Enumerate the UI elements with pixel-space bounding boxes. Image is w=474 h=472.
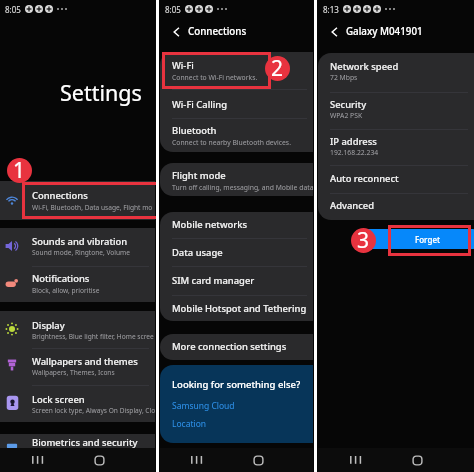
button[interactable]: Recents <box>349 455 362 465</box>
staticText: 192.168.22.234 <box>330 148 379 157</box>
staticText: Data usage <box>172 246 223 259</box>
button[interactable] <box>318 193 474 220</box>
button[interactable] <box>318 92 474 129</box>
button[interactable]: Recents <box>31 455 44 465</box>
staticText: Mobile Hotspot and Tethering <box>172 302 307 315</box>
staticText: More connection settings <box>172 340 287 353</box>
staticText: Wi-Fi Calling <box>172 98 227 111</box>
staticText: 8:05 <box>165 4 181 15</box>
button[interactable] <box>0 311 155 348</box>
button[interactable]: Home <box>412 455 423 466</box>
button[interactable]: Recents <box>190 455 203 465</box>
staticText: 72 Mbps <box>330 73 358 82</box>
staticText: Galaxy M041901 <box>346 25 423 38</box>
staticText: 1 <box>13 158 26 181</box>
staticText: Flight mode <box>172 169 226 182</box>
button[interactable] <box>160 334 313 360</box>
staticText: Connections <box>32 189 88 202</box>
button[interactable] <box>318 165 474 193</box>
staticText: Connections <box>188 25 247 38</box>
button[interactable]: Back <box>170 25 184 39</box>
button[interactable] <box>160 266 313 295</box>
staticText: Turn off calling, messaging, and Mobile … <box>172 183 316 192</box>
button[interactable]: Home <box>253 455 264 466</box>
staticText: Biometrics and security <box>32 436 138 449</box>
staticText: SIM card manager <box>172 274 255 287</box>
staticText: Wi-Fi, Bluetooth, Data usage, Flight mo <box>32 203 153 212</box>
staticText: Connect to Wi-Fi networks. <box>172 73 258 82</box>
staticText: Samsung Cloud <box>172 400 235 412</box>
staticText: Notifications <box>32 272 90 285</box>
staticText: Connect to nearby Bluetooth devices. <box>172 138 291 147</box>
staticText: Forget <box>415 234 441 245</box>
button[interactable] <box>0 228 155 266</box>
button[interactable] <box>160 416 313 436</box>
staticText: Screen lock type, Always On Display, Clo <box>32 406 156 415</box>
staticText: Brightness, Blue light filter, Home scre… <box>32 332 154 341</box>
button[interactable] <box>160 238 313 266</box>
staticText: Location <box>172 418 207 430</box>
button[interactable] <box>160 163 313 196</box>
button[interactable] <box>160 396 313 416</box>
staticText: Auto reconnect <box>330 172 399 185</box>
button[interactable] <box>0 266 155 302</box>
staticText: 8:05 <box>5 4 21 15</box>
staticText: Network speed <box>330 60 399 73</box>
staticText: 8:13 <box>323 4 339 15</box>
staticText: Mobile networks <box>172 218 248 231</box>
button[interactable] <box>160 212 313 238</box>
staticText: Wallpapers, Themes, Icons <box>32 368 115 377</box>
staticText: Bluetooth <box>172 124 217 137</box>
staticText: Sound mode, Ringtone, Volume <box>32 248 130 257</box>
button[interactable] <box>0 181 155 220</box>
button[interactable] <box>160 89 313 118</box>
button[interactable] <box>0 434 155 457</box>
staticText: IP address <box>330 135 377 148</box>
staticText: Block, allow, prioritise <box>32 286 100 295</box>
button[interactable] <box>160 295 313 321</box>
staticText: 2 <box>271 56 284 79</box>
button[interactable]: Home <box>94 455 105 466</box>
button[interactable] <box>0 348 155 385</box>
staticText: Sounds and vibration <box>32 235 128 248</box>
button[interactable] <box>318 129 474 165</box>
staticText: WPA2 PSK <box>330 111 363 120</box>
staticText: Wi-Fi <box>172 59 194 72</box>
button[interactable] <box>0 385 155 422</box>
button[interactable] <box>160 118 313 152</box>
staticText: Advanced <box>330 199 375 212</box>
staticText: 3 <box>357 228 370 251</box>
staticText: Security <box>330 98 367 111</box>
staticText: Settings <box>60 78 142 107</box>
button[interactable] <box>160 52 313 89</box>
staticText: Display <box>32 319 65 332</box>
staticText: Wallpapers and themes <box>32 355 138 368</box>
staticText: Lock screen <box>32 393 85 406</box>
button[interactable] <box>318 53 474 92</box>
staticText: Looking for something else? <box>172 378 301 391</box>
button[interactable]: Forget <box>366 229 474 249</box>
button[interactable]: Back <box>328 25 342 39</box>
